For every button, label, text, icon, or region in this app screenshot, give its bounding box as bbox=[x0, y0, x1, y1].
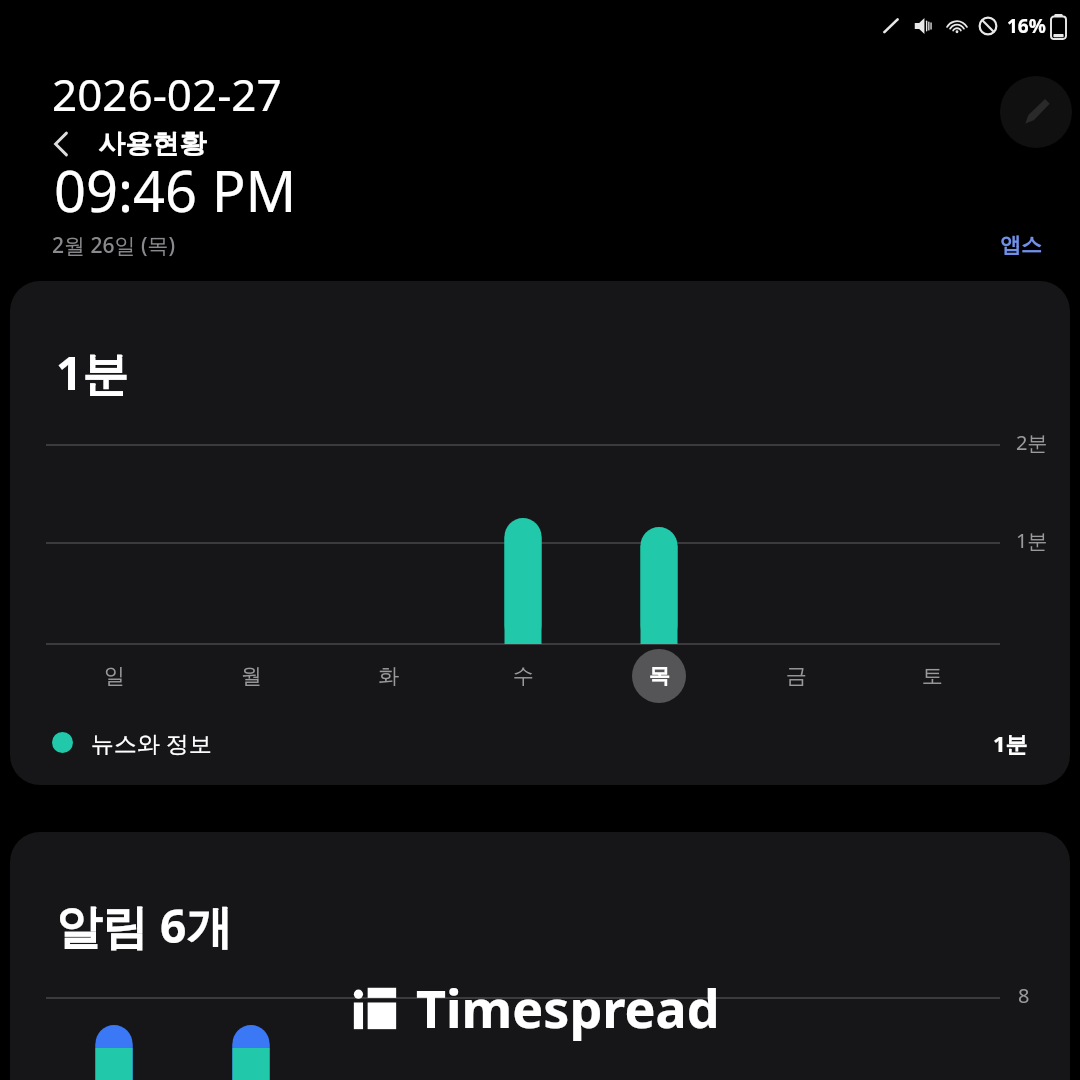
staticText: 1분 bbox=[993, 728, 1028, 758]
staticText: 2월 26일 (목) bbox=[52, 231, 176, 260]
staticText: 8 bbox=[1018, 982, 1030, 1009]
staticText: 월 bbox=[241, 663, 262, 689]
staticText: 2026-02-27 bbox=[52, 64, 282, 124]
staticText: 앱스 bbox=[1000, 232, 1042, 258]
button[interactable]: 사용현황 bbox=[44, 108, 206, 180]
staticText: 일 bbox=[104, 663, 125, 689]
staticText: 금 bbox=[786, 663, 807, 689]
staticText: 알림 6개 bbox=[56, 894, 233, 957]
button[interactable]: 알림 6개 bbox=[10, 832, 1070, 1080]
staticText: 16% bbox=[1007, 13, 1046, 39]
staticText: Timespread bbox=[416, 972, 720, 1043]
staticText: 토 bbox=[922, 663, 943, 689]
staticText: 목 bbox=[649, 663, 670, 689]
staticText: 09:46 PM bbox=[54, 152, 297, 228]
staticText: 뉴스와 정보 bbox=[91, 727, 212, 758]
button[interactable]: 1분 bbox=[10, 281, 1070, 785]
staticText: 1분 bbox=[1016, 527, 1048, 554]
staticText: 2분 bbox=[1016, 429, 1048, 456]
staticText: 수 bbox=[513, 663, 534, 689]
button[interactable]: 앱스 bbox=[1000, 232, 1042, 258]
staticText: 사용현황 bbox=[98, 127, 206, 161]
staticText: 1분 bbox=[56, 341, 129, 404]
staticText: 화 bbox=[378, 663, 399, 689]
button[interactable]: Edit bbox=[1000, 76, 1072, 148]
